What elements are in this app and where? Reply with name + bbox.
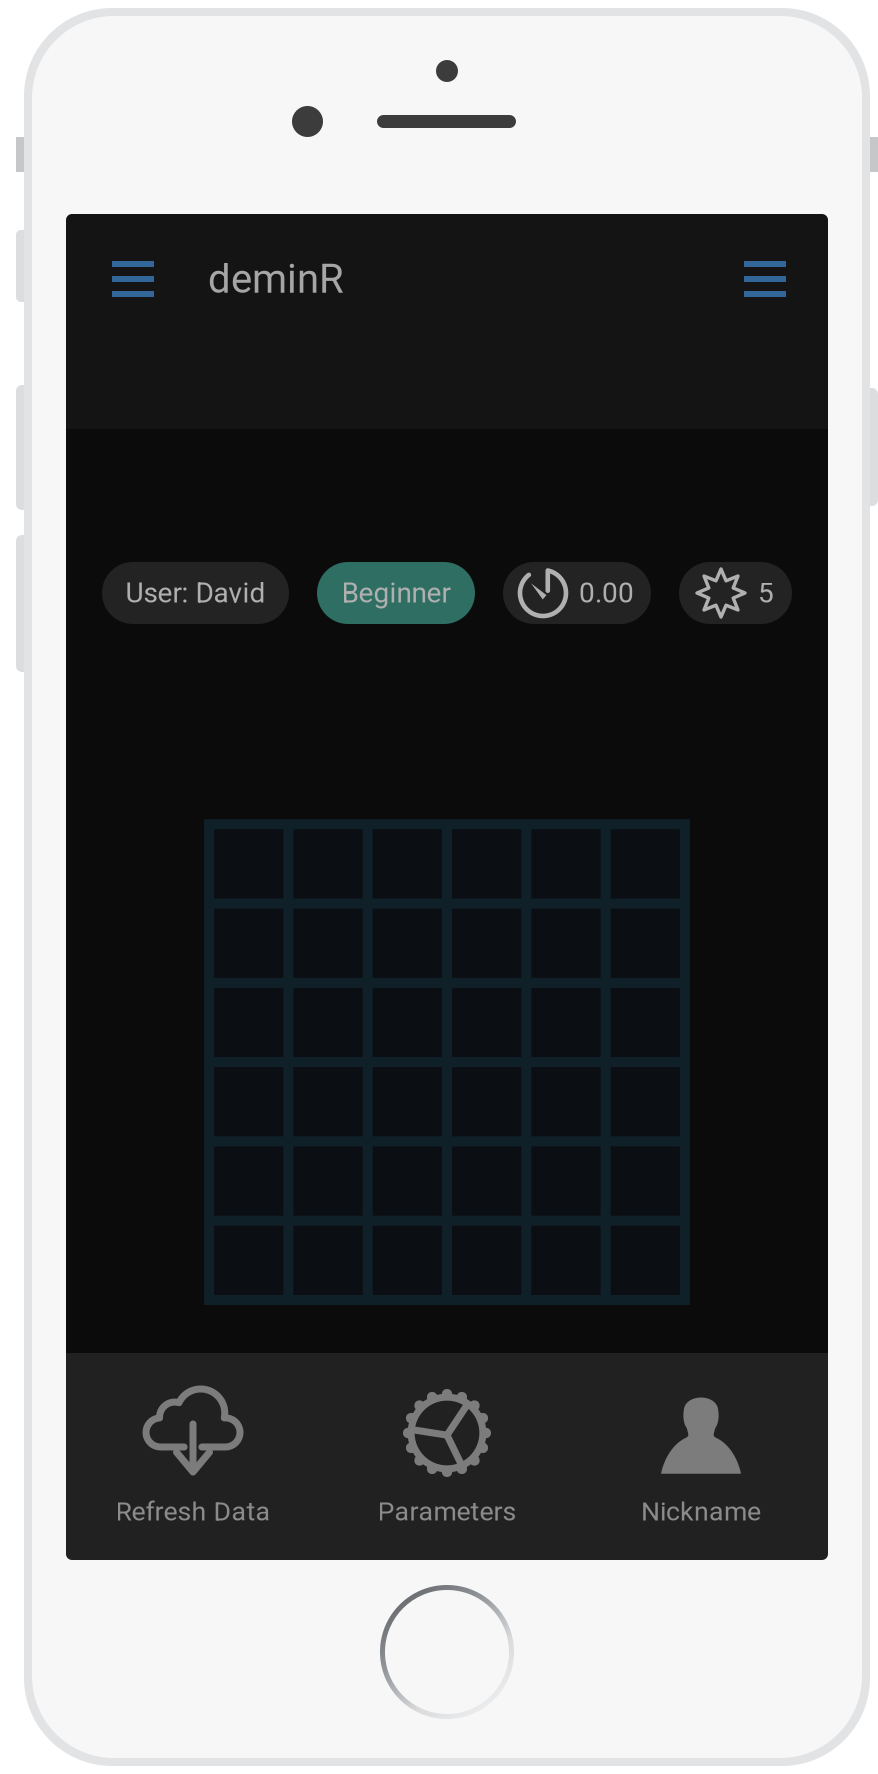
button[interactable]: Options	[726, 247, 804, 311]
button[interactable]: 0.00	[503, 562, 651, 624]
staticText: 5	[758, 577, 774, 609]
button[interactable]: 5	[679, 562, 792, 624]
staticText: 0.00	[579, 577, 634, 609]
button[interactable]: User: David	[102, 562, 289, 624]
button[interactable]: Refresh Data	[66, 1353, 320, 1560]
staticText: Parameters	[377, 1496, 516, 1527]
staticText: deminR	[208, 256, 344, 302]
button[interactable]: Beginner	[317, 562, 475, 624]
button[interactable]: Parameters	[320, 1353, 574, 1560]
button[interactable]: Menu	[94, 247, 172, 311]
staticText: User: David	[125, 577, 265, 609]
staticText: Beginner	[341, 577, 450, 609]
staticText: Refresh Data	[115, 1496, 270, 1527]
staticText: Nickname	[641, 1496, 761, 1527]
button[interactable]: Nickname	[574, 1353, 828, 1560]
